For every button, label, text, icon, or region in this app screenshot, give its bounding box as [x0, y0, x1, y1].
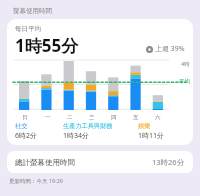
staticText: 一 — [45, 114, 51, 121]
staticText: 6時2分 — [15, 131, 38, 141]
button[interactable]: 生產力工具與財務 — [63, 122, 138, 141]
staticText: 生產力工具與財務 — [63, 122, 113, 130]
staticText: 社交 — [15, 122, 28, 130]
staticText: 二 — [67, 114, 73, 121]
staticText: 1時34分 — [63, 131, 90, 141]
button[interactable]: 社交 — [15, 122, 63, 141]
staticText: 六 — [155, 114, 161, 121]
staticText: 日 — [22, 114, 28, 121]
staticText: 1時11分 — [138, 131, 165, 141]
staticText: 更新時間：今天 19:29 — [9, 177, 63, 185]
staticText: 五 — [133, 114, 139, 121]
staticText: 螢幕使用時間 — [13, 7, 52, 15]
staticText: 平均 — [179, 78, 190, 85]
other: Comparison — [146, 46, 153, 53]
staticText: 上週 39% — [155, 44, 185, 54]
staticText: 娛樂 — [138, 122, 151, 130]
staticText: 四 — [111, 114, 117, 121]
staticText: 1時55分 — [15, 34, 79, 57]
staticText: 每日平均 — [15, 25, 41, 33]
staticText: 三 — [89, 114, 95, 121]
button[interactable]: 娛樂 — [138, 122, 185, 141]
staticText: 總計螢幕使用時間 — [15, 158, 75, 167]
staticText: 13時26分 — [152, 157, 185, 167]
button[interactable]: 每日平均 — [7, 19, 193, 145]
button[interactable]: 總計螢幕使用時間 — [7, 151, 193, 173]
staticText: 4時 — [181, 60, 190, 68]
